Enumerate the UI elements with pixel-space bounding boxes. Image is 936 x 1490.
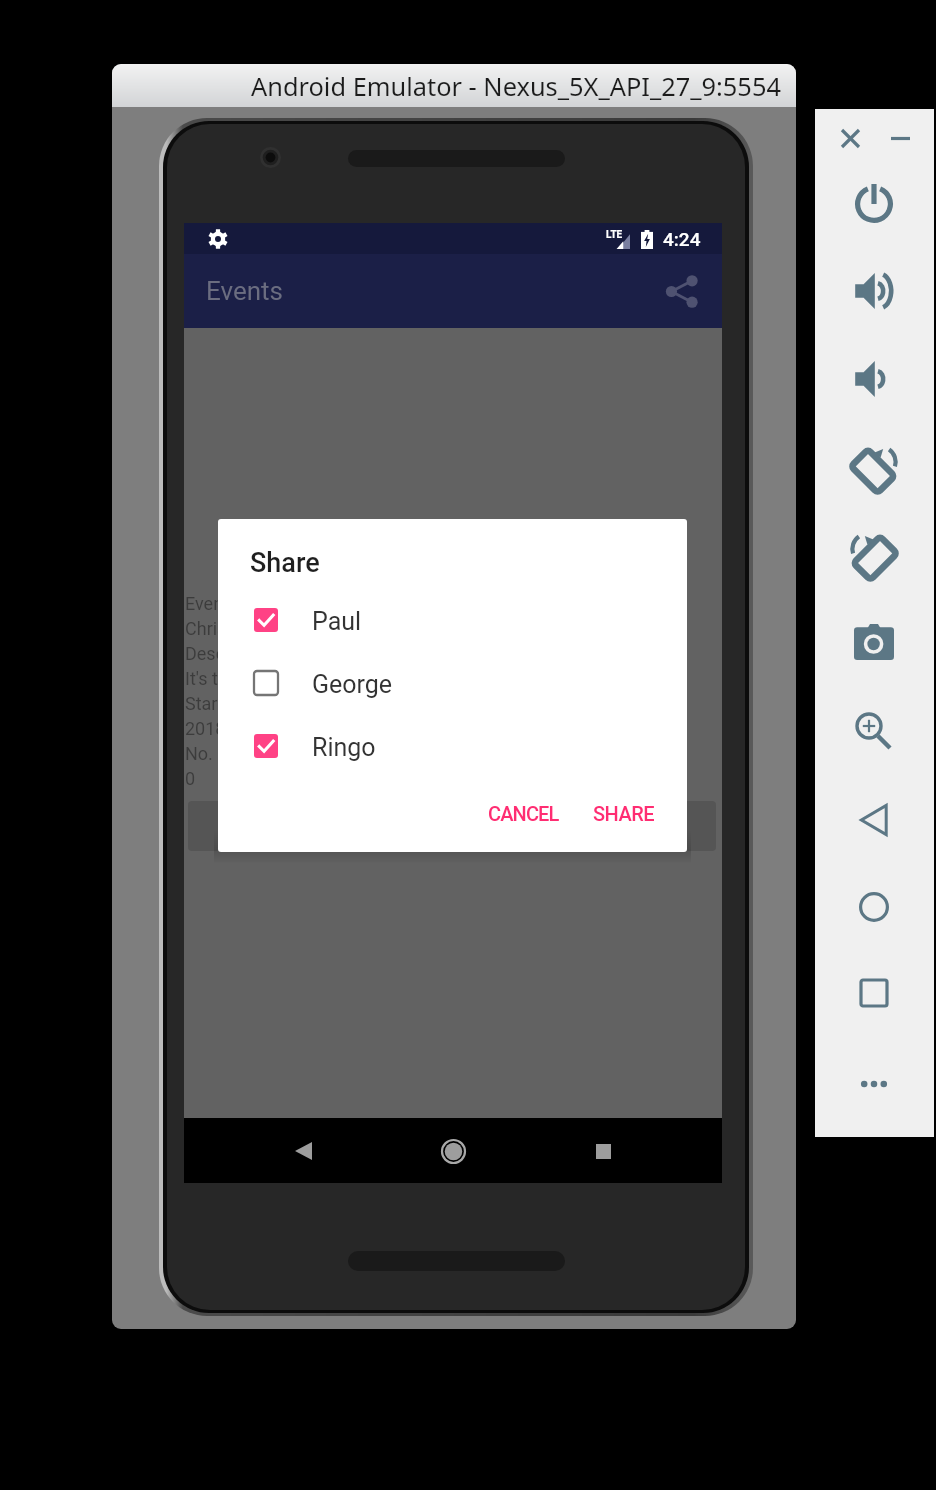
button[interactable]: Home	[850, 883, 898, 931]
staticText: Share	[250, 547, 320, 579]
staticText: Event Name: Christmas Party Description:…	[185, 593, 314, 789]
button[interactable]: SHARE	[576, 790, 672, 836]
button[interactable]: Power	[850, 180, 898, 228]
staticText: CANCEL	[488, 802, 559, 825]
button[interactable]: Back	[272, 1120, 334, 1182]
button[interactable]: Zoom	[850, 704, 898, 752]
button[interactable]: CANCEL	[471, 790, 576, 836]
button[interactable]: George	[218, 658, 687, 708]
button[interactable]: Volume down	[850, 355, 898, 403]
button[interactable]: Ringo	[218, 721, 687, 771]
button[interactable]: Share	[658, 267, 706, 315]
button[interactable]: Recents	[572, 1120, 634, 1182]
button[interactable]: Settings	[198, 223, 238, 254]
button[interactable]: Overview	[850, 969, 898, 1017]
button[interactable]: More	[850, 1060, 898, 1108]
button[interactable]	[188, 801, 716, 851]
staticText: Android Emulator - Nexus_5X_API_27_9:555…	[251, 69, 781, 104]
staticText: Ringo	[312, 733, 376, 762]
staticText: Events	[206, 276, 283, 306]
staticText: 4:24	[663, 228, 701, 250]
button[interactable]: Rotate right	[850, 531, 898, 579]
button[interactable]: Home	[422, 1120, 484, 1182]
button[interactable]: Rotate left	[850, 444, 898, 492]
button[interactable]: Volume up	[850, 267, 898, 315]
button[interactable]: Close	[830, 118, 870, 158]
staticText: LTE	[606, 229, 623, 241]
button[interactable]: Back	[850, 796, 898, 844]
staticText: George	[312, 670, 393, 699]
button[interactable]: Minimize	[880, 118, 920, 158]
staticText: Paul	[312, 607, 362, 636]
button[interactable]: Paul	[218, 595, 687, 645]
staticText: SHARE	[593, 802, 655, 825]
button[interactable]: Screenshot	[850, 618, 898, 666]
